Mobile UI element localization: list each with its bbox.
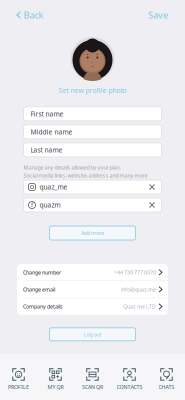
button[interactable]: Add more <box>49 226 135 240</box>
button[interactable]: MY QR <box>37 351 74 400</box>
button[interactable]: Change number <box>17 264 168 281</box>
button[interactable]: Company details <box>17 298 168 315</box>
button[interactable]: Set new profile photo <box>58 85 126 96</box>
staticText: CONTACTS <box>116 383 142 391</box>
staticText: quazm <box>39 201 60 209</box>
staticText: Set new profile photo <box>58 86 126 95</box>
staticText: Change email <box>23 286 55 293</box>
staticText: Manage any details allowed by your plan. <box>23 164 120 171</box>
button[interactable]: First name <box>23 107 161 121</box>
staticText: +44 730 777 0070 <box>114 269 156 276</box>
button[interactable]: Back <box>14 5 46 25</box>
staticText: PROFILE <box>8 383 29 391</box>
staticText: Change number <box>23 269 61 276</box>
staticText: MY QR <box>47 383 63 391</box>
staticText: Last name <box>30 145 62 154</box>
staticText: Save <box>148 9 168 21</box>
button[interactable]: CONTACTS <box>111 351 148 400</box>
button[interactable]: Middle name <box>23 125 161 139</box>
staticText: quaz_me <box>39 183 67 191</box>
button[interactable]: Last name <box>23 143 161 157</box>
staticText: First name <box>30 109 63 118</box>
staticText: Quaz me LTD <box>123 303 156 310</box>
button[interactable]: CHATS <box>148 351 185 400</box>
staticText: Social media links, website, address and… <box>23 172 147 179</box>
staticText: Add more <box>81 229 104 237</box>
button[interactable]: Profile photo <box>70 37 114 81</box>
staticText: Company details <box>23 303 63 310</box>
button[interactable]: Remove quaz_me <box>147 182 156 191</box>
button[interactable]: Remove quazm <box>147 200 156 209</box>
button[interactable]: Change email <box>17 281 168 298</box>
button[interactable]: SCAN QR <box>74 351 111 400</box>
staticText: CHATS <box>158 383 174 391</box>
staticText: SCAN QR <box>82 383 103 391</box>
button[interactable]: Log out <box>49 328 135 341</box>
staticText: info@quaz.me <box>121 286 156 293</box>
button[interactable]: Save <box>145 5 171 25</box>
staticText: Back <box>23 9 43 21</box>
staticText: Middle name <box>30 127 72 136</box>
staticText: Log out <box>83 331 101 338</box>
button[interactable]: PROFILE <box>0 351 37 400</box>
